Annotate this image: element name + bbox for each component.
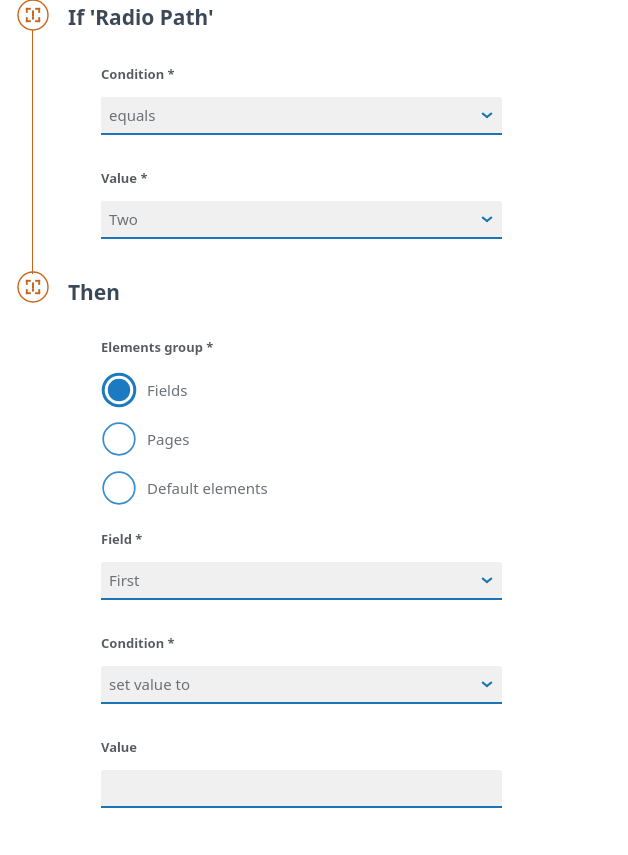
button[interactable]: Step node bbox=[17, 271, 49, 303]
staticText: set value to bbox=[109, 674, 190, 694]
button[interactable]: Pages bbox=[102, 419, 402, 459]
staticText: Value * bbox=[101, 169, 148, 187]
staticText: Fields bbox=[147, 380, 188, 400]
staticText: If 'Radio Path' bbox=[68, 3, 214, 32]
staticText: Pages bbox=[147, 429, 190, 449]
staticText: Two bbox=[109, 209, 138, 229]
staticText: Elements group * bbox=[101, 338, 214, 356]
button[interactable]: Two bbox=[101, 201, 502, 239]
staticText: Then bbox=[68, 278, 120, 307]
staticText: Condition * bbox=[101, 634, 175, 652]
staticText: Field * bbox=[101, 530, 143, 548]
button[interactable]: equals bbox=[101, 97, 502, 135]
staticText: First bbox=[109, 570, 140, 590]
staticText: Value bbox=[101, 738, 138, 756]
button[interactable]: Default elements bbox=[102, 468, 402, 508]
button[interactable]: set value to bbox=[101, 666, 502, 704]
staticText: Default elements bbox=[147, 478, 268, 498]
staticText: Condition * bbox=[101, 65, 175, 83]
button[interactable]: Fields bbox=[102, 370, 402, 410]
button[interactable] bbox=[101, 770, 502, 808]
button[interactable]: Step node bbox=[17, 0, 49, 31]
staticText: equals bbox=[109, 105, 156, 125]
button[interactable]: First bbox=[101, 562, 502, 600]
